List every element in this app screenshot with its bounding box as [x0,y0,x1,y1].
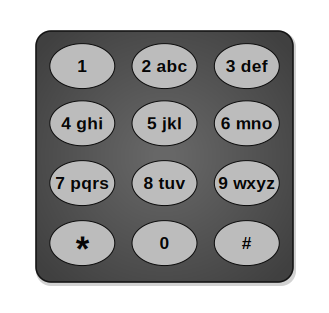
staticText: 9 wxyz [218,173,275,193]
button[interactable]: 6 mno [214,101,279,146]
staticText: 8 tuv [143,173,185,193]
button[interactable]: 3 def [214,44,279,89]
button[interactable]: 1 [50,44,115,89]
button[interactable]: # [214,221,279,266]
staticText: 3 def [226,56,268,76]
button[interactable]: 2 abc [132,44,197,89]
staticText: 0 [159,233,169,253]
staticText: # [242,233,252,253]
staticText: 5 jkl [147,114,182,133]
staticText: 4 ghi [61,114,103,133]
button[interactable]: 0 [132,221,197,266]
staticText: * [76,229,89,268]
staticText: 2 abc [141,56,187,76]
staticText: 1 [77,56,87,76]
staticText: 6 mno [221,114,273,133]
staticText: 7 pqrs [55,173,109,193]
button[interactable]: 7 pqrs [50,161,115,206]
button[interactable]: star [50,221,115,266]
button[interactable]: 9 wxyz [214,161,279,206]
button[interactable]: 8 tuv [132,161,197,206]
button[interactable]: 4 ghi [50,101,115,146]
button[interactable]: 5 jkl [132,101,197,146]
